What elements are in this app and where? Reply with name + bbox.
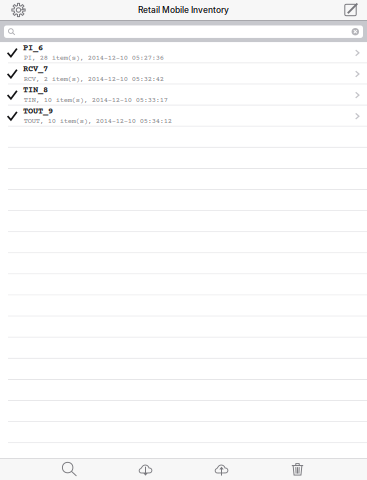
button[interactable]: Settings (0, 0, 37, 20)
button[interactable]: RCV_7 (0, 63, 367, 85)
staticText: TIN_8 (23, 86, 48, 95)
staticText: PI_6 (23, 43, 43, 53)
staticText: TOUT_9 (23, 107, 53, 116)
staticText: TOUT, 10 item(s), 2014-12-10 05:34:12 (24, 118, 172, 125)
button[interactable]: Delete (278, 458, 316, 480)
button[interactable]: Search (50, 458, 88, 480)
button[interactable]: TIN_8 (0, 85, 367, 106)
staticText: RCV, 2 item(s), 2014-12-10 05:32:42 (24, 75, 164, 83)
button[interactable]: Upload (202, 458, 240, 480)
staticText: Retail Mobile Inventory (138, 5, 229, 15)
button[interactable]: Download (126, 458, 164, 480)
staticText: TIN, 10 item(s), 2014-12-10 05:33:17 (24, 96, 168, 104)
button[interactable]: PI_6 (0, 42, 367, 63)
staticText: RCV_7 (23, 64, 48, 74)
button[interactable]: Search (4, 25, 363, 38)
button[interactable]: TOUT_9 (0, 106, 367, 127)
button[interactable]: Compose (334, 0, 367, 20)
staticText: PI, 28 item(s), 2014-12-10 05:27:36 (24, 54, 164, 62)
